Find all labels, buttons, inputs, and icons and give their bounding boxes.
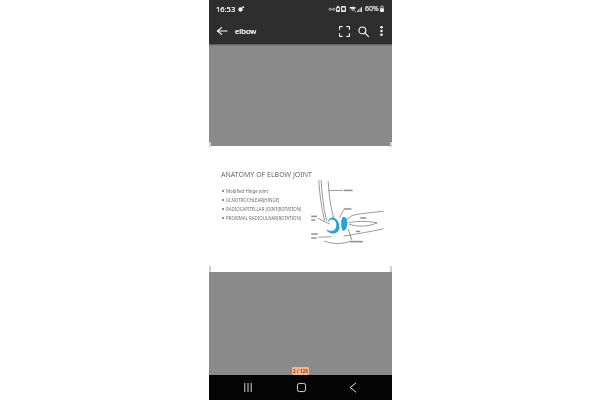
staticText: ULNOTROCHLEAR(HINGE): [226, 197, 280, 203]
button[interactable]: Home: [288, 375, 314, 400]
button[interactable]: Fit to screen: [335, 19, 354, 43]
button[interactable]: 2 / 128: [292, 367, 309, 375]
button[interactable]: Search: [354, 19, 373, 43]
button[interactable]: More options: [373, 19, 390, 43]
staticText: Modified Hinge joint: [226, 188, 269, 194]
staticText: 2 / 128: [293, 368, 308, 374]
staticText: 60%: [365, 4, 379, 14]
staticText: ANATOMY OF ELBOW JOINT: [221, 170, 312, 180]
staticText: PROXIMAL RADIOULNAR(ROTATION): [226, 215, 302, 221]
staticText: elbow: [235, 26, 257, 36]
staticText: 16:53: [216, 4, 236, 14]
button[interactable]: Back: [212, 19, 232, 43]
staticText: RADIOCAPITELLAR JOINT(ROTATION): [226, 206, 302, 212]
button[interactable]: Back: [340, 375, 366, 400]
button[interactable]: Recent apps: [235, 375, 261, 400]
